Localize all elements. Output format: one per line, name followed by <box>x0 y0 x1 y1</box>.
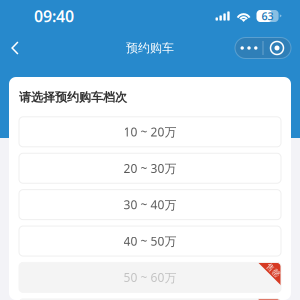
staticText: 预约购车 <box>126 41 174 55</box>
staticText: 请选择预约购车档次 <box>19 90 127 105</box>
staticText: 40 ~ 50万 <box>123 233 176 249</box>
staticText: 售罄 <box>265 265 281 275</box>
button[interactable]: 30 ~ 40万 <box>19 190 281 220</box>
button[interactable]: Back <box>0 33 30 63</box>
button[interactable]: 20 ~ 30万 <box>19 153 281 183</box>
staticText: 50 ~ 60万 <box>123 269 176 285</box>
staticText: 09:40 <box>34 5 74 27</box>
button[interactable]: 60 ~ 80万 <box>19 299 281 300</box>
staticText: 20 ~ 30万 <box>123 160 176 176</box>
staticText: 10 ~ 20万 <box>123 124 176 140</box>
staticText: 63 <box>262 9 274 23</box>
staticText: 30 ~ 40万 <box>123 197 176 213</box>
button[interactable]: 40 ~ 50万 <box>19 226 281 256</box>
button[interactable]: 50 ~ 60万 <box>19 262 281 292</box>
button[interactable]: More options <box>235 37 291 58</box>
button[interactable]: 10 ~ 20万 <box>19 117 281 147</box>
